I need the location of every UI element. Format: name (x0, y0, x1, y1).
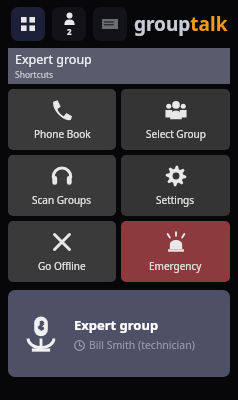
staticText: Emergency (149, 259, 202, 273)
button[interactable]: Messages (93, 7, 127, 41)
staticText: Phone Book (34, 127, 91, 141)
button[interactable]: Contacts (52, 7, 86, 41)
staticText: Select Group (146, 127, 206, 141)
staticText: grouptalk (134, 11, 228, 37)
staticText: Bill Smith (technician) (89, 338, 195, 352)
staticText: Go Offline (38, 259, 86, 273)
staticText: Settings (156, 193, 195, 207)
staticText: Shortcuts (15, 69, 54, 81)
staticText: Expert group (15, 51, 92, 68)
button[interactable]: Expert group (8, 290, 230, 377)
button[interactable]: Emergency (121, 221, 230, 282)
button[interactable]: Expert group (8, 48, 230, 84)
button[interactable]: Phone Book (8, 89, 116, 150)
button[interactable]: Select Group (121, 89, 230, 150)
staticText: Scan Groups (32, 193, 92, 207)
button[interactable]: Scan Groups (8, 155, 116, 216)
button[interactable]: Dashboard (11, 7, 45, 41)
staticText: Expert group (74, 316, 159, 334)
button[interactable]: Settings (121, 155, 230, 216)
staticText: 2 (67, 26, 72, 37)
button[interactable]: Go Offline (8, 221, 116, 282)
